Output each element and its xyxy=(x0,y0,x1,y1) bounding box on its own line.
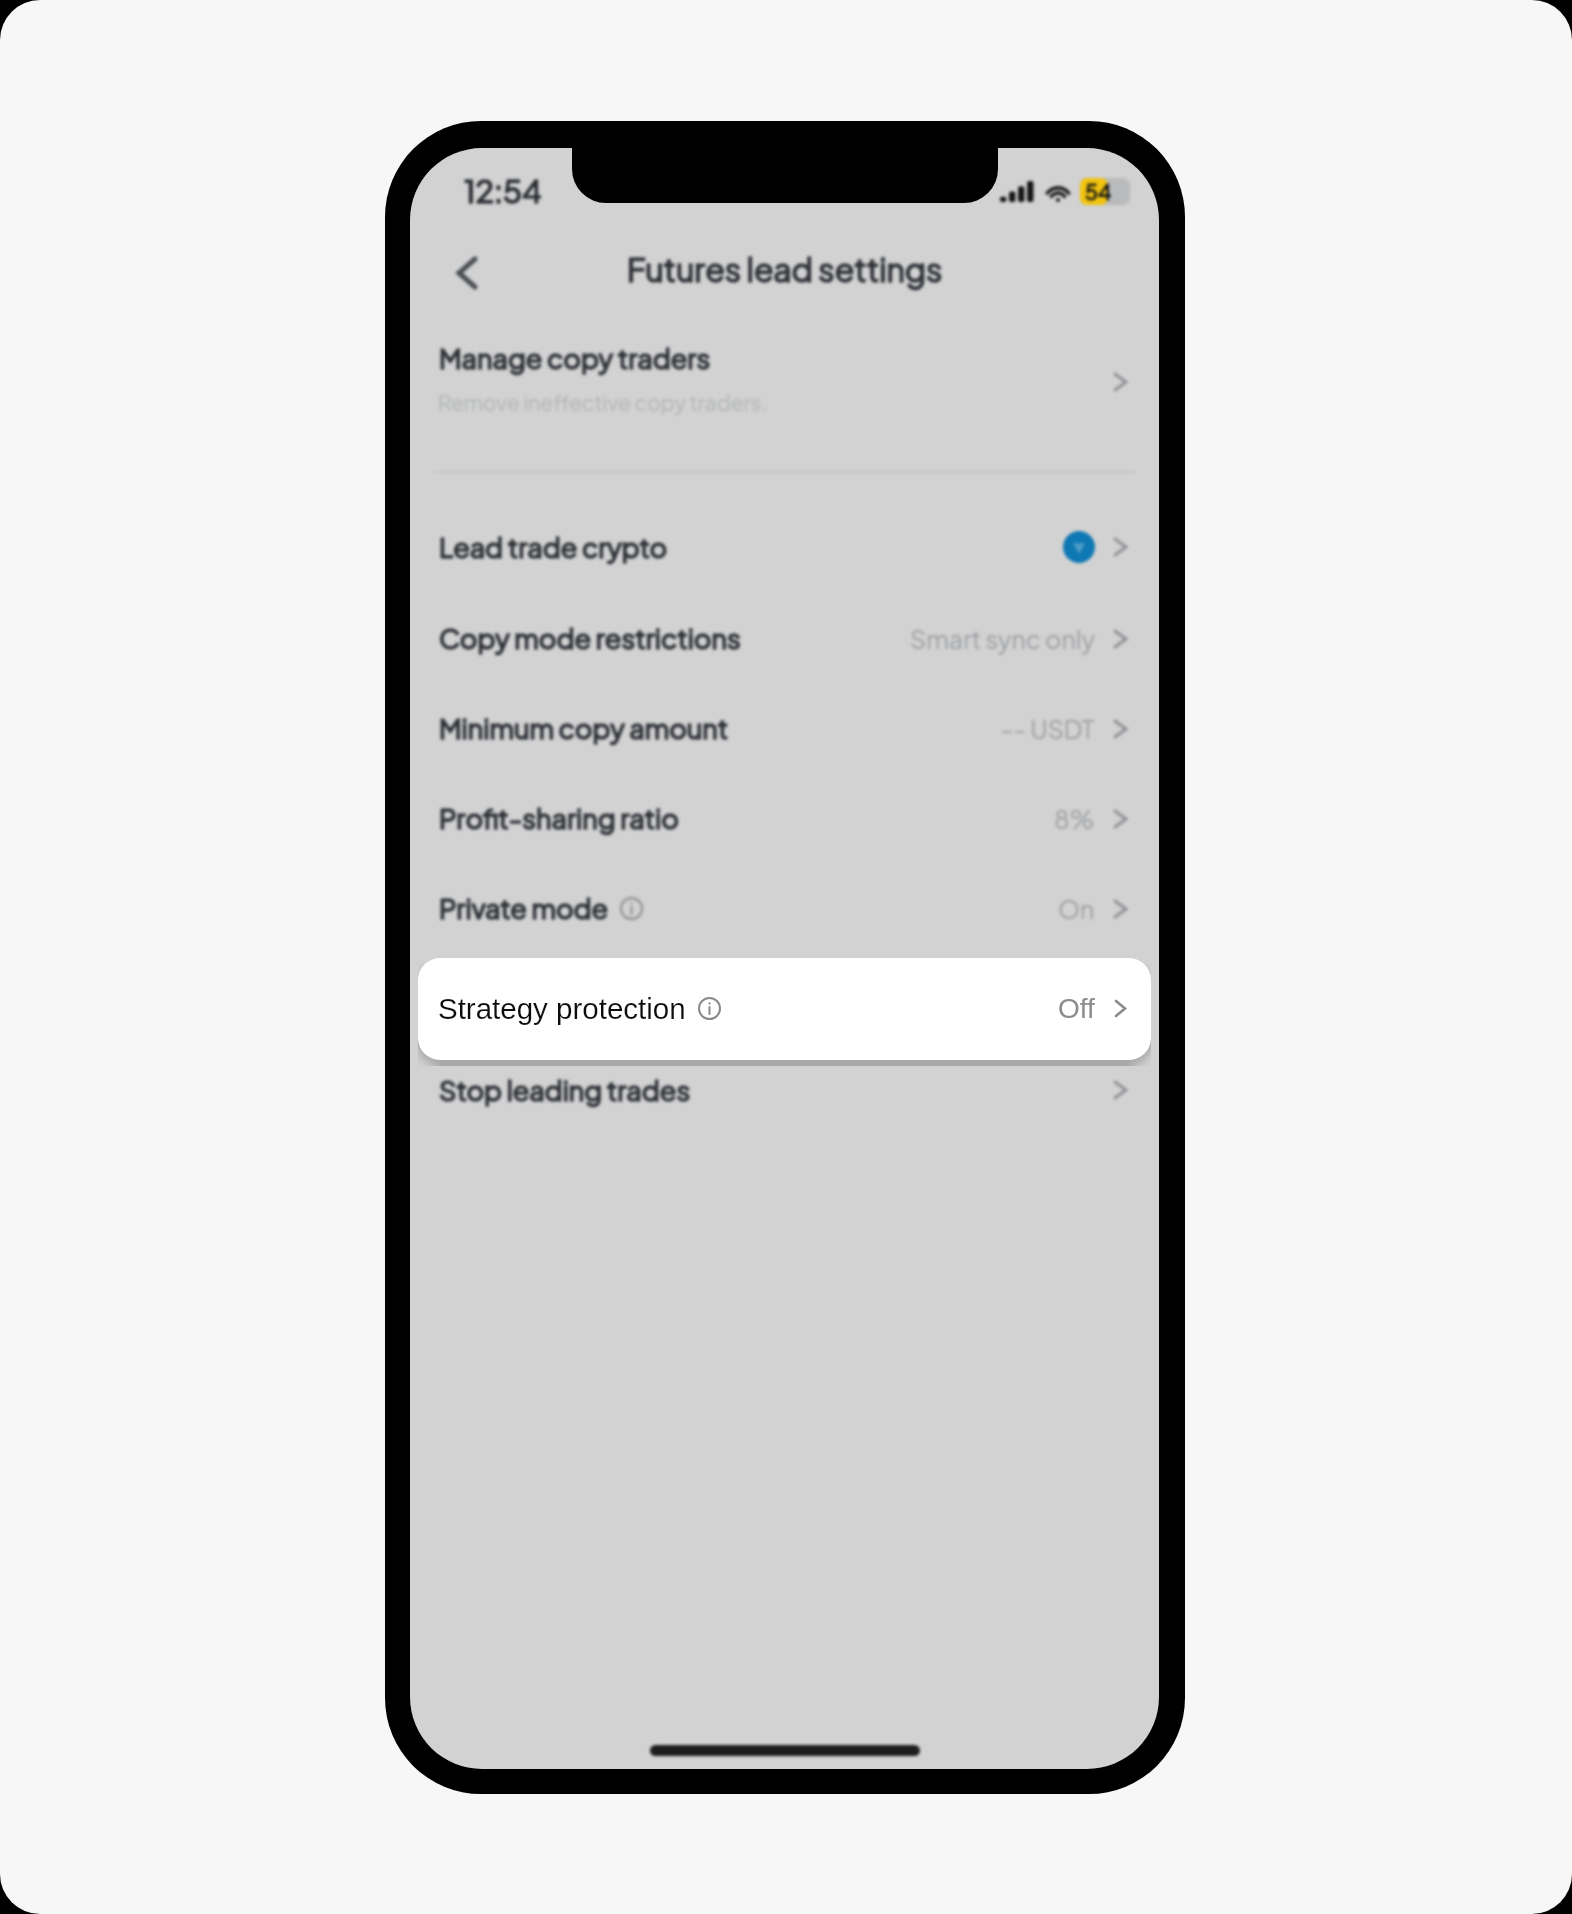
staticText: Manage copy traders xyxy=(439,341,711,375)
staticText: 54 xyxy=(1085,178,1112,204)
staticText: 8% xyxy=(1054,803,1095,834)
staticText: Futures lead settings xyxy=(627,249,943,289)
button[interactable]: Back xyxy=(437,243,497,303)
staticText: 54 xyxy=(1085,178,1112,204)
button[interactable]: Minimum copy amount xyxy=(410,685,1159,771)
staticText: Minimum copy amount xyxy=(439,711,729,745)
button[interactable]: Strategy protection xyxy=(418,958,1151,1060)
staticText: Manage copy traders xyxy=(439,341,711,375)
staticText: 12:54 xyxy=(464,171,542,210)
staticText: Strategy protection xyxy=(438,992,686,1025)
staticText: -- USDT xyxy=(1001,713,1095,744)
staticText: On xyxy=(1058,893,1095,924)
staticText: Smart sync only xyxy=(910,623,1095,654)
staticText: Private mode xyxy=(439,891,609,925)
staticText: Profit-sharing ratio xyxy=(439,801,679,835)
button[interactable]: Manage copy traders xyxy=(410,320,1159,444)
staticText: Profit-sharing ratio xyxy=(439,801,679,835)
staticText: Lead trade crypto xyxy=(439,530,668,564)
staticText: Copy mode restrictions xyxy=(439,621,741,655)
staticText: Remove ineffective copy traders. xyxy=(438,389,768,415)
button[interactable]: Lead trade crypto xyxy=(410,504,1159,590)
staticText: Minimum copy amount xyxy=(439,711,729,745)
staticText: Stop leading trades xyxy=(439,1073,691,1107)
button[interactable]: Private mode xyxy=(410,865,1159,951)
staticText: Off xyxy=(1058,993,1095,1024)
staticText: Stop leading trades xyxy=(439,1073,691,1107)
staticText: Private mode xyxy=(439,891,609,925)
staticText: Lead trade crypto xyxy=(439,530,668,564)
staticText: 12:54 xyxy=(464,171,542,210)
staticText: Futures lead settings xyxy=(627,249,943,289)
button[interactable]: Profit-sharing ratio xyxy=(410,775,1159,861)
button[interactable]: Copy mode restrictions xyxy=(410,595,1159,681)
staticText: Copy mode restrictions xyxy=(439,621,741,655)
button[interactable]: Stop leading trades xyxy=(410,1047,1159,1133)
